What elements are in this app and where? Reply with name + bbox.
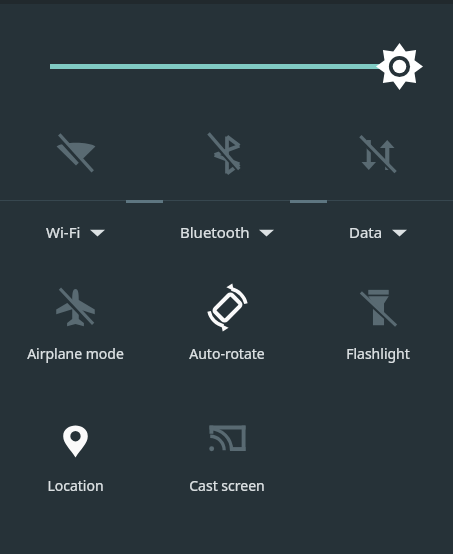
button[interactable]: Wi-Fi: [36, 214, 115, 250]
button[interactable]: Data: [302, 110, 453, 200]
button[interactable]: Data: [339, 214, 417, 250]
button[interactable]: Auto-rotate: [189, 285, 265, 363]
staticText: Cast screen: [189, 476, 265, 495]
button[interactable]: Location: [47, 417, 104, 495]
button[interactable]: Cast screen: [189, 417, 265, 495]
staticText: Flashlight: [346, 344, 410, 363]
button[interactable]: Wi-Fi: [0, 110, 151, 200]
staticText: Bluetooth: [180, 222, 250, 242]
button[interactable]: Bluetooth: [170, 214, 284, 250]
staticText: Airplane mode: [27, 344, 124, 363]
button[interactable]: Flashlight: [346, 285, 410, 363]
button[interactable]: Airplane mode: [27, 285, 124, 363]
staticText: Data: [349, 222, 383, 242]
button[interactable]: Bluetooth: [151, 110, 302, 200]
staticText: Location: [47, 476, 104, 495]
staticText: Wi-Fi: [46, 222, 81, 242]
button[interactable]: Brightness: [0, 4, 453, 110]
staticText: Auto-rotate: [189, 344, 265, 363]
